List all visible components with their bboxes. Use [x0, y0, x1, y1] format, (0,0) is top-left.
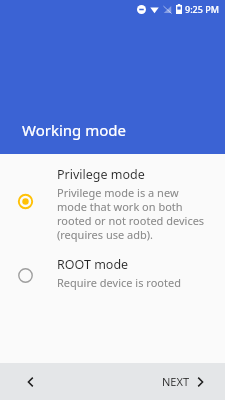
staticText: Privilege mode: [57, 166, 145, 183]
staticText: NEXT: [162, 374, 190, 389]
staticText: Working mode: [22, 120, 126, 140]
staticText: 9:25 PM: [185, 3, 219, 15]
button[interactable]: Privilege mode: [0, 154, 225, 246]
staticText: ROOT mode: [57, 256, 129, 273]
button[interactable]: NEXT: [160, 370, 207, 393]
button[interactable]: ROOT mode: [0, 246, 225, 294]
staticText: Privilege mode is a new mode that work o…: [57, 185, 211, 242]
button[interactable]: Back: [18, 369, 44, 395]
staticText: Require device is rooted: [57, 275, 181, 290]
